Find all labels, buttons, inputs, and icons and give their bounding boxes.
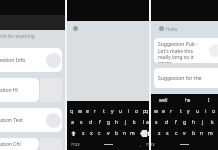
button[interactable]: . (133, 139, 149, 150)
button[interactable]: Backspace (137, 128, 149, 139)
staticText: i (128, 108, 130, 115)
button[interactable]: Profile (73, 26, 78, 31)
staticText: d (89, 119, 93, 126)
button[interactable]: g (105, 117, 112, 128)
button[interactable]: x (88, 128, 95, 139)
button[interactable]: x (164, 128, 171, 139)
staticText: u (196, 108, 200, 115)
button[interactable]: m (129, 128, 136, 139)
button[interactable]: i (202, 106, 209, 117)
button[interactable]: Shift (67, 128, 79, 139)
button[interactable]: w (152, 106, 159, 117)
button[interactable]: l (140, 117, 147, 128)
button[interactable]: v (181, 128, 188, 139)
button[interactable]: e (84, 106, 91, 117)
button[interactable]: estion Info (0, 48, 65, 72)
button[interactable]: w (76, 106, 83, 117)
button[interactable]: b (113, 128, 120, 139)
button[interactable]: he (185, 97, 191, 103)
button[interactable]: n (198, 128, 205, 139)
staticText: x (166, 130, 169, 137)
button[interactable]: o (133, 106, 140, 117)
button[interactable]: i (125, 106, 132, 117)
button[interactable]: z (80, 128, 87, 139)
button[interactable]: d (163, 117, 170, 128)
button[interactable]: Suggestion for the (154, 68, 218, 88)
button[interactable]: p (141, 106, 148, 117)
button[interactable]: r (92, 106, 99, 117)
staticText: j (202, 119, 204, 126)
button[interactable]: s (78, 117, 85, 128)
button[interactable]: c (96, 128, 103, 139)
button[interactable]: Hubs (159, 25, 218, 32)
button[interactable]: t (177, 106, 184, 117)
staticText: b (192, 130, 196, 137)
button[interactable]: ation Chi (0, 138, 65, 150)
button[interactable]: v (105, 128, 112, 139)
button[interactable]: I (208, 97, 210, 103)
button[interactable]: h (113, 117, 120, 128)
button[interactable]: u (194, 106, 201, 117)
button[interactable]: ?123 (67, 139, 83, 150)
button[interactable]: f (172, 117, 179, 128)
staticText: k (133, 119, 136, 126)
button[interactable]: j (122, 117, 129, 128)
staticText: l (143, 119, 145, 126)
button[interactable]: ?123 (142, 139, 158, 150)
staticText: v (183, 130, 186, 137)
staticText: c (175, 130, 178, 137)
button[interactable]: Space (98, 139, 118, 150)
button[interactable]: s (153, 117, 160, 128)
button[interactable]: Suggestion Pub - Let's make this really … (154, 38, 218, 63)
button[interactable]: y (109, 106, 116, 117)
button[interactable]: b (190, 128, 197, 139)
staticText: m (208, 130, 213, 137)
staticText: h (192, 119, 196, 126)
staticText: m (130, 130, 135, 137)
button[interactable]: d (87, 117, 94, 128)
button[interactable]: r (168, 106, 175, 117)
staticText: v (107, 130, 110, 137)
button[interactable]: stion Hi (0, 78, 65, 102)
button[interactable]: u (117, 106, 124, 117)
button[interactable]: o (210, 106, 217, 117)
staticText: ?123 (146, 142, 155, 147)
staticText: Hubs (166, 26, 178, 32)
button[interactable]: a (69, 117, 76, 128)
staticText: rch for anything (0, 33, 35, 39)
staticText: estion Info (0, 57, 26, 64)
staticText: h (115, 119, 119, 126)
button[interactable]: q (68, 106, 75, 117)
button[interactable]: y (185, 106, 192, 117)
button[interactable]: well (159, 97, 168, 103)
button[interactable]: c (173, 128, 180, 139)
staticText: j (125, 119, 127, 126)
staticText: s (155, 119, 158, 126)
staticText: g (183, 119, 187, 126)
button[interactable]: k (131, 117, 138, 128)
button[interactable]: z (156, 128, 163, 139)
button[interactable]: g (181, 117, 188, 128)
button[interactable]: f (96, 117, 103, 128)
staticText: d (165, 119, 169, 126)
button[interactable]: a (144, 117, 151, 128)
staticText: ?123 (71, 142, 80, 147)
button[interactable]: Space (174, 139, 194, 150)
button[interactable]: j (199, 117, 206, 128)
button[interactable]: h (190, 117, 197, 128)
button[interactable]: m (207, 128, 214, 139)
staticText: w (78, 108, 82, 115)
staticText: b (115, 130, 119, 137)
button[interactable]: ation Text (0, 108, 65, 132)
button[interactable]: n (121, 128, 128, 139)
button[interactable]: q (143, 106, 150, 117)
button[interactable]: Shift (142, 128, 154, 139)
button[interactable]: t (100, 106, 107, 117)
button[interactable]: k (209, 117, 216, 128)
staticText: a (71, 119, 74, 126)
staticText: s (80, 119, 83, 126)
staticText: y (111, 108, 114, 115)
button[interactable]: e (160, 106, 167, 117)
